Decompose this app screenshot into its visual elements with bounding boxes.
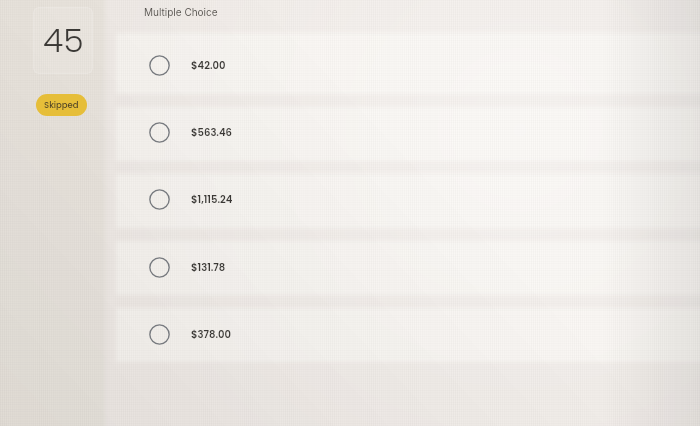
button[interactable]: Select option $378.00 (116, 308, 700, 362)
other: Select option $378.00 (149, 324, 170, 345)
other: Select option $563.46 (149, 122, 170, 143)
staticText: 45 (43, 17, 84, 63)
staticText: $131.78 (191, 260, 226, 274)
button[interactable]: Select option $42.00 (116, 33, 700, 94)
button[interactable]: Skipped (36, 94, 87, 116)
staticText: Skipped (44, 99, 79, 111)
other: Select option $131.78 (149, 257, 170, 278)
staticText: $42.00 (191, 58, 226, 72)
button[interactable]: Select option $131.78 (116, 241, 700, 295)
other: Select option $1,115.24 (149, 189, 170, 210)
button[interactable]: Select option $1,115.24 (116, 174, 700, 228)
other: Select option $42.00 (149, 55, 170, 76)
staticText: $378.00 (191, 327, 231, 341)
staticText: Multiple Choice (144, 6, 218, 18)
staticText: $1,115.24 (191, 192, 233, 206)
button[interactable]: Select option $563.46 (116, 107, 700, 161)
staticText: $563.46 (191, 125, 232, 139)
button[interactable]: 45 (33, 7, 93, 74)
